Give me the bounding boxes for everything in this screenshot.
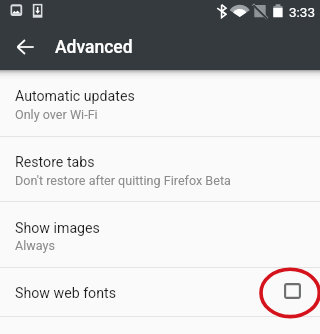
button[interactable]: Show images	[0, 202, 320, 267]
staticText: Restore tabs	[15, 154, 95, 171]
button[interactable]: Restore tabs	[0, 137, 320, 201]
button[interactable]: Automatic updates	[0, 79, 320, 136]
button[interactable]: Navigate up	[7, 24, 43, 70]
staticText: Always	[15, 238, 55, 253]
staticText: Show images	[15, 220, 100, 237]
staticText: Automatic updates	[15, 88, 135, 105]
staticText: Only over Wi-Fi	[15, 107, 98, 122]
staticText: Don't restore after quitting Firefox Bet…	[15, 173, 231, 188]
staticText: Advanced	[55, 37, 133, 58]
staticText: Show web fonts	[15, 285, 117, 302]
staticText: 3:33	[289, 4, 316, 20]
button[interactable]: Show web fonts	[0, 268, 320, 316]
